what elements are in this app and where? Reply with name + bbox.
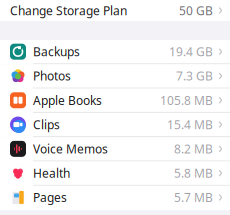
button[interactable]: Pages xyxy=(0,186,230,210)
staticText: 5.7 MB xyxy=(174,189,213,205)
button[interactable]: Change Storage Plan xyxy=(0,0,230,21)
staticText: 50 GB xyxy=(179,2,213,18)
button[interactable]: Apple Books xyxy=(0,89,230,113)
button[interactable]: Backups xyxy=(0,40,230,64)
staticText: Photos xyxy=(33,68,71,84)
button[interactable]: Voice Memos xyxy=(0,137,230,161)
staticText: 19.4 GB xyxy=(169,44,213,60)
staticText: Clips xyxy=(33,117,60,132)
button[interactable]: Health xyxy=(0,161,230,186)
staticText: 5.8 MB xyxy=(174,165,213,181)
button[interactable]: Photos xyxy=(0,64,230,89)
staticText: 8.2 MB xyxy=(174,141,213,157)
staticText: Change Storage Plan xyxy=(10,2,127,18)
staticText: Voice Memos xyxy=(33,141,108,157)
button[interactable]: Clips xyxy=(0,113,230,137)
staticText: 105.8 MB xyxy=(160,92,213,108)
staticText: Pages xyxy=(33,189,67,205)
staticText: Health xyxy=(33,165,70,181)
staticText: Apple Books xyxy=(33,92,102,108)
staticText: 15.4 MB xyxy=(167,117,213,132)
staticText: 7.3 GB xyxy=(176,68,213,84)
staticText: Backups xyxy=(33,44,80,60)
